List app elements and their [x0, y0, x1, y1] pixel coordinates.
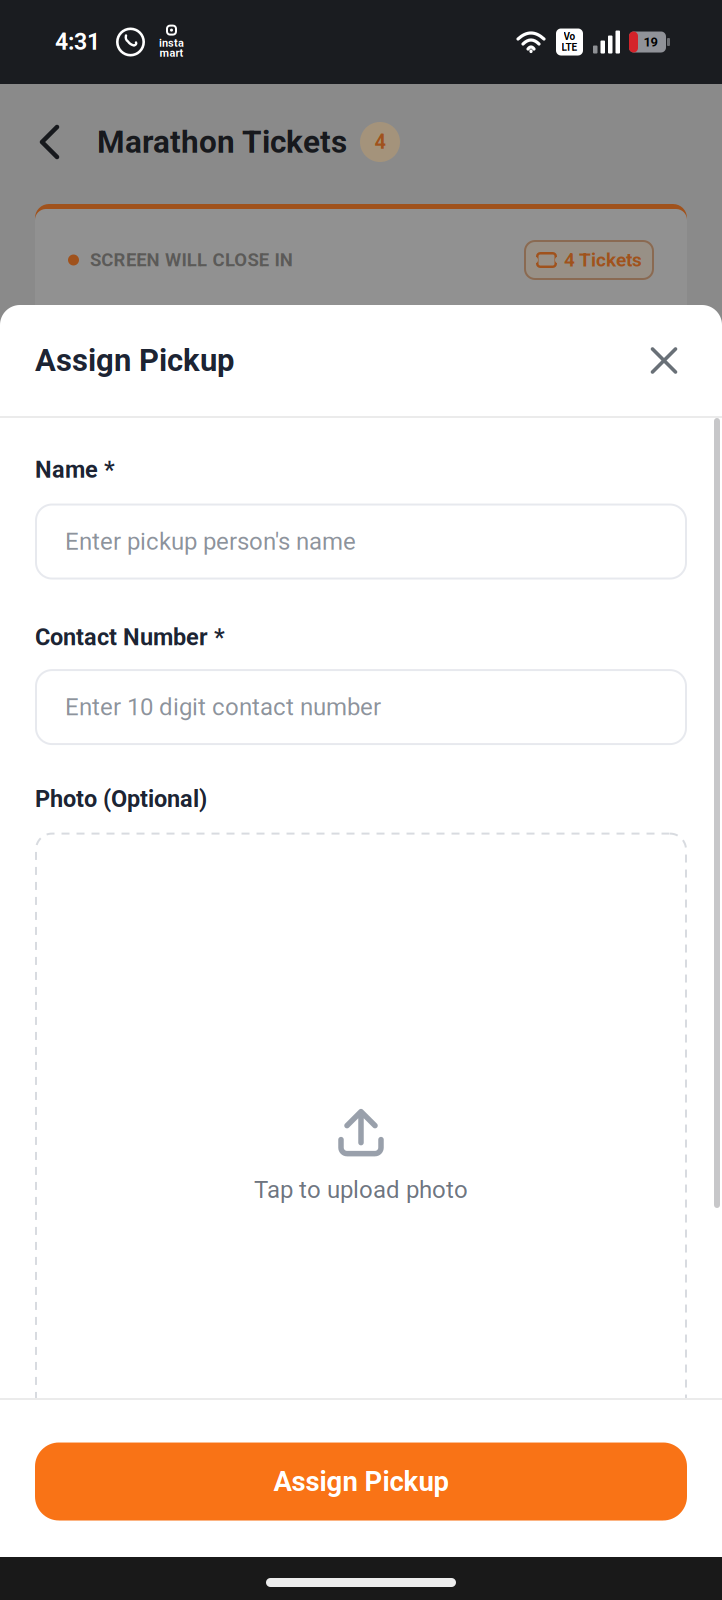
- staticText: Marathon Tickets: [97, 123, 347, 160]
- staticText: insta: [159, 37, 184, 49]
- staticText: 19: [643, 34, 657, 50]
- button[interactable]: Close: [651, 347, 687, 373]
- staticText: 4: [374, 130, 385, 154]
- button[interactable]: Enter pickup person's name: [35, 503, 687, 579]
- button[interactable]: Enter 10 digit contact number: [35, 669, 687, 745]
- staticText: Enter pickup person's name: [65, 527, 356, 556]
- staticText: Assign Pickup: [35, 342, 234, 379]
- staticText: Assign Pickup: [273, 1465, 448, 1498]
- staticText: SCREEN WILL CLOSE IN: [90, 249, 293, 271]
- button[interactable]: 4 Tickets: [524, 240, 654, 280]
- staticText: 4:31: [55, 28, 100, 55]
- staticText: Contact Number *: [35, 623, 225, 651]
- button[interactable]: Tap to upload photo: [35, 813, 687, 1433]
- staticText: Tap to upload photo: [254, 1176, 468, 1204]
- staticText: Vo: [563, 31, 575, 42]
- button[interactable]: Back: [0, 124, 61, 160]
- staticText: Enter 10 digit contact number: [65, 693, 381, 721]
- staticText: 4 Tickets: [564, 249, 642, 271]
- staticText: Photo (Optional): [35, 785, 207, 813]
- staticText: LTE: [561, 41, 577, 53]
- staticText: mart: [159, 46, 183, 59]
- staticText: Name *: [35, 456, 115, 483]
- button[interactable]: Assign Pickup: [35, 1442, 687, 1520]
